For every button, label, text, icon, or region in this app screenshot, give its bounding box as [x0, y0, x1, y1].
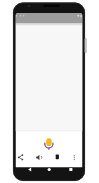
button[interactable] [53, 152, 62, 162]
button[interactable] [16, 152, 25, 162]
button[interactable] [66, 165, 74, 173]
button[interactable] [25, 165, 34, 173]
button[interactable] [70, 152, 79, 162]
button[interactable] [43, 135, 56, 151]
button[interactable] [34, 152, 43, 162]
button[interactable] [84, 38, 87, 53]
button[interactable] [45, 165, 54, 173]
